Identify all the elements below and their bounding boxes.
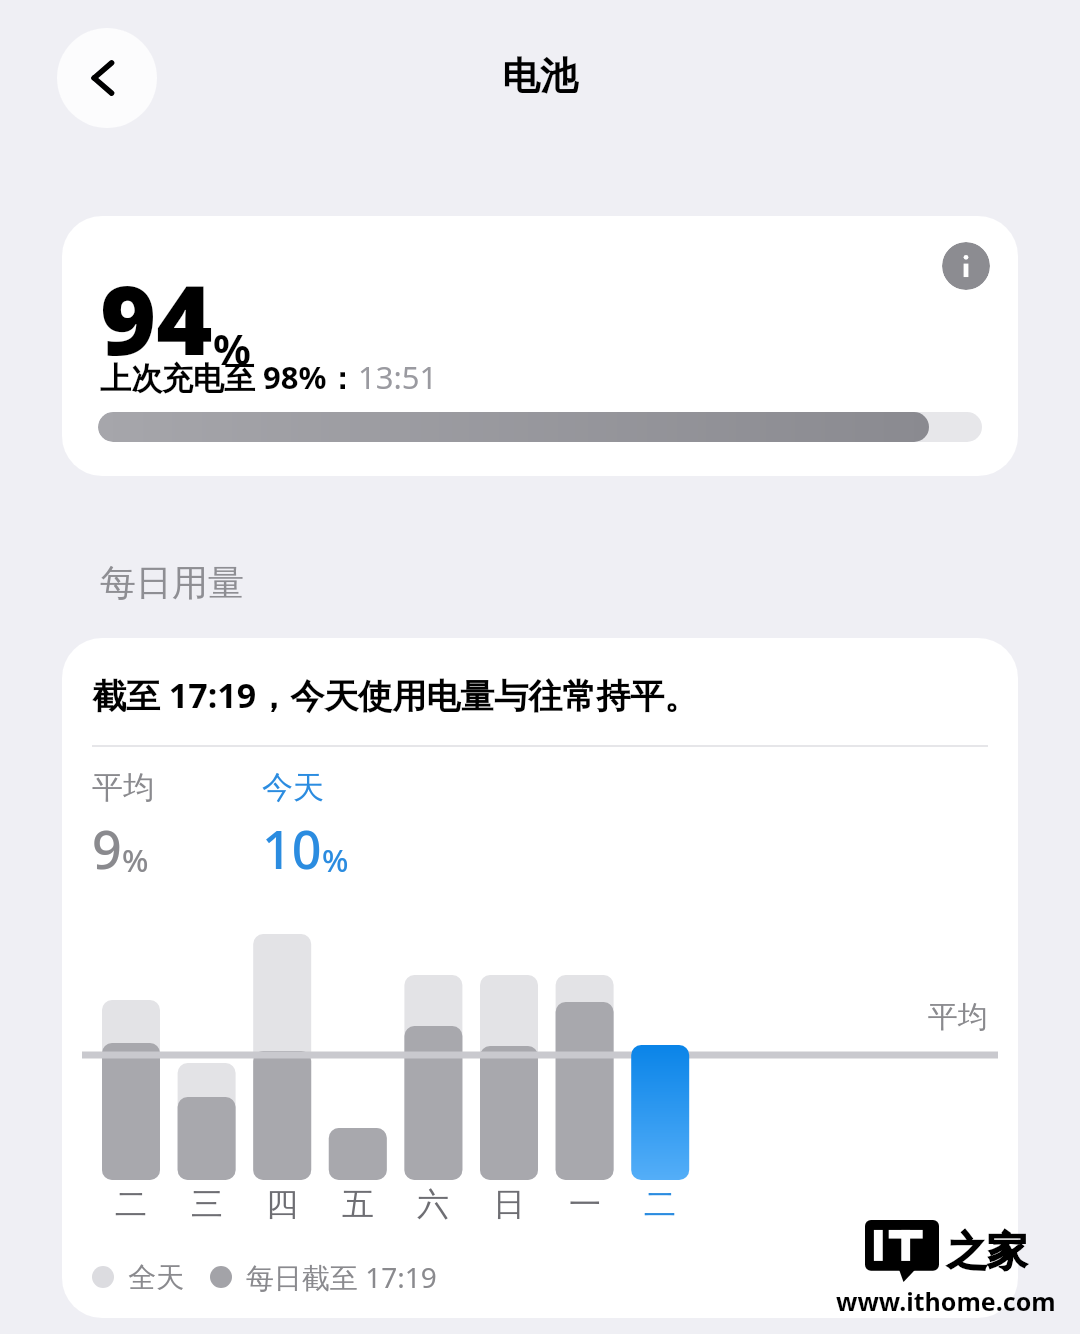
staticText: 今天 xyxy=(262,768,324,807)
staticText: 10 xyxy=(262,813,322,884)
staticText: 六 xyxy=(417,1184,449,1224)
staticText: 四 xyxy=(266,1184,298,1224)
staticText: 每日用量 xyxy=(100,560,244,605)
staticText: www.ithome.com xyxy=(836,1284,1056,1318)
staticText: 上次充电至 98%： xyxy=(100,356,358,398)
staticText: 截至 17:19，今天使用电量与往常持平。 xyxy=(92,672,699,718)
staticText: 平均 xyxy=(92,768,154,807)
button[interactable]: Information xyxy=(62,216,1018,476)
staticText: 日 xyxy=(493,1184,525,1224)
staticText: 平均 xyxy=(928,998,988,1036)
button[interactable]: Back xyxy=(57,28,157,128)
staticText: % xyxy=(213,320,251,377)
button[interactable]: 截至 17:19，今天使用电量与往常持平。 xyxy=(62,638,1018,1318)
button[interactable]: Information xyxy=(942,242,990,290)
staticText: 二 xyxy=(644,1184,676,1224)
staticText: % xyxy=(322,839,349,881)
staticText: % xyxy=(122,839,149,881)
staticText: 之家 xyxy=(947,1226,1027,1276)
staticText: 9 xyxy=(92,813,122,884)
staticText: 13:51 xyxy=(358,356,438,398)
staticText: 全天 xyxy=(128,1260,184,1295)
staticText: 94 xyxy=(100,252,213,383)
staticText: 二 xyxy=(115,1184,147,1224)
staticText: 五 xyxy=(342,1184,374,1224)
staticText: 电池 xyxy=(502,52,578,100)
staticText: 一 xyxy=(569,1184,601,1224)
staticText: 每日截至 17:19 xyxy=(246,1258,437,1296)
staticText: 三 xyxy=(191,1184,223,1224)
